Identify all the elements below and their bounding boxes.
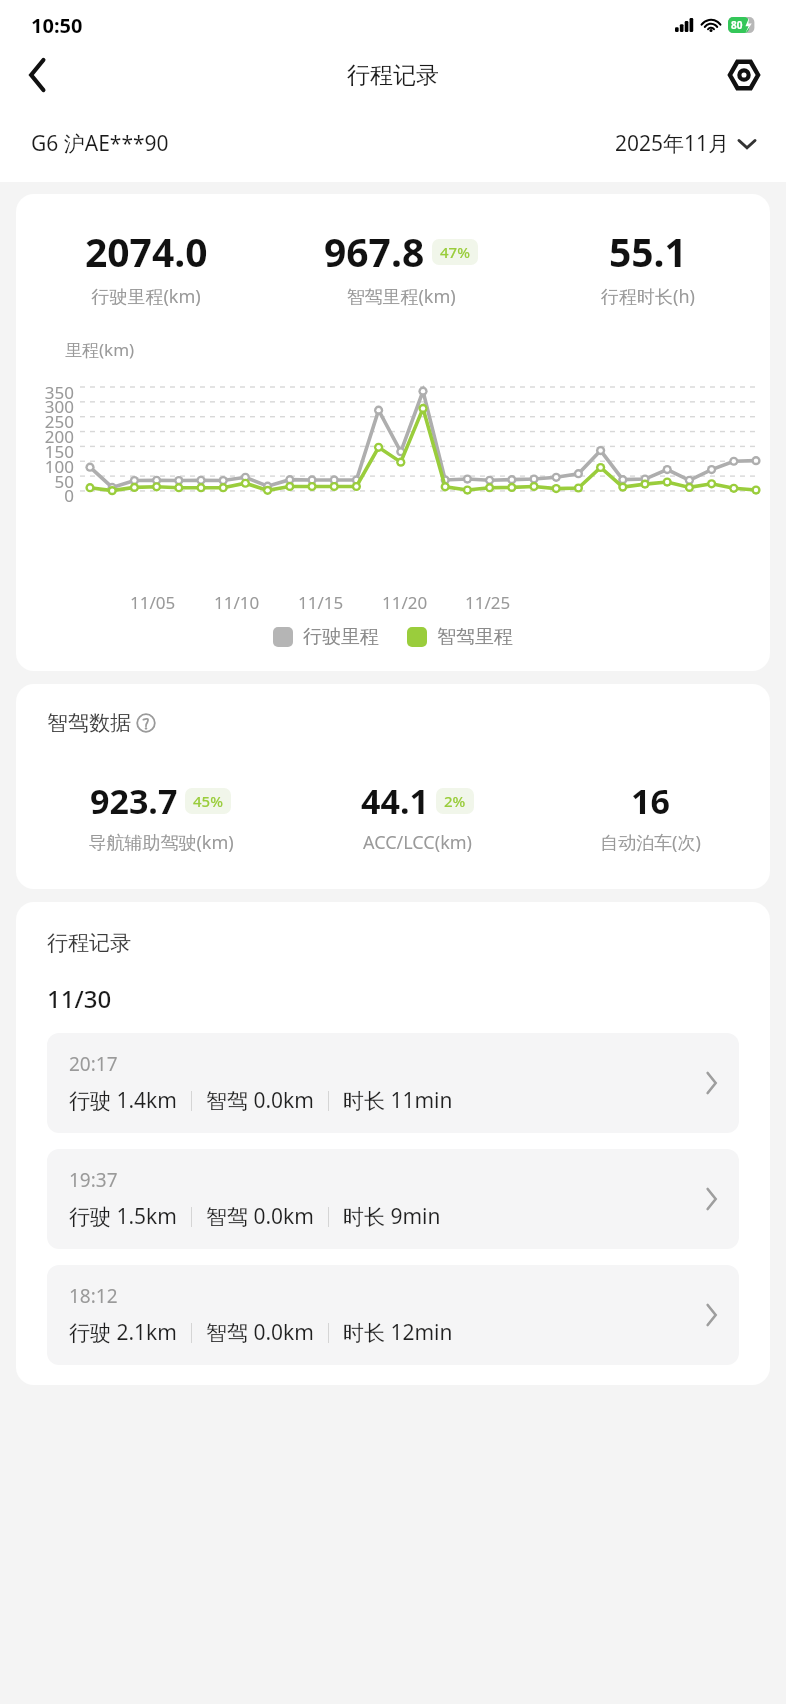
staticText: 19:37 (69, 1167, 118, 1193)
staticText: 自动泊车(次) (600, 830, 701, 855)
staticText: G6 沪AE***90 (31, 129, 169, 158)
staticText: 11/20 (382, 591, 428, 614)
staticText: 行程时长(h) (601, 284, 695, 309)
staticText: 100 (44, 455, 74, 478)
staticText: 11/25 (465, 591, 511, 614)
staticText: 时长 9min (343, 1202, 441, 1231)
button[interactable]: Settings (720, 51, 768, 99)
staticText: 时长 12min (343, 1318, 453, 1347)
staticText: 923.7 (90, 778, 178, 824)
staticText: 44.1 (361, 778, 429, 824)
staticText: 行驶 2.1km (69, 1318, 177, 1347)
staticText: 10:50 (31, 12, 83, 39)
staticText: 150 (44, 440, 74, 463)
staticText: 导航辅助驾驶(km) (88, 830, 234, 855)
staticText: 967.8 (324, 225, 425, 278)
staticText: 11/30 (47, 982, 112, 1015)
staticText: 智驾 0.0km (206, 1318, 314, 1347)
button[interactable]: Back (14, 51, 62, 99)
button[interactable]: 20:17 (47, 1033, 739, 1133)
staticText: 智驾里程 (437, 625, 513, 649)
staticText: 11/10 (214, 591, 260, 614)
staticText: 行程记录 (47, 930, 131, 956)
staticText: 250 (44, 410, 74, 433)
button[interactable]: 19:37 (47, 1149, 739, 1249)
staticText: 50 (54, 470, 74, 493)
staticText: 时长 11min (343, 1086, 453, 1115)
staticText: 300 (44, 395, 74, 418)
staticText: 2074.0 (85, 225, 208, 278)
button[interactable]: 2025年11月 (615, 129, 755, 158)
staticText: 45% (193, 791, 223, 811)
staticText: 行驶里程 (303, 625, 379, 649)
staticText: 11/15 (298, 591, 344, 614)
staticText: 行驶 1.5km (69, 1202, 177, 1231)
staticText: 智驾 0.0km (206, 1202, 314, 1231)
staticText: 200 (44, 425, 74, 448)
staticText: 80 (731, 18, 743, 32)
staticText: 11/05 (130, 591, 176, 614)
staticText: 2025年11月 (615, 129, 730, 158)
staticText: ACC/LCC(km) (363, 830, 472, 855)
staticText: 行驶 1.4km (69, 1086, 177, 1115)
staticText: 55.1 (609, 225, 687, 278)
staticText: 智驾里程(km) (346, 284, 456, 309)
staticText: 里程(km) (65, 338, 135, 361)
button[interactable]: 18:12 (47, 1265, 739, 1365)
staticText: 2% (444, 791, 466, 811)
staticText: 16 (631, 778, 670, 824)
button[interactable]: 智驾数据 (47, 710, 156, 736)
staticText: 行驶里程(km) (91, 284, 201, 309)
staticText: 智驾 0.0km (206, 1086, 314, 1115)
staticText: 350 (44, 381, 74, 404)
staticText: 20:17 (69, 1051, 118, 1077)
staticText: 47% (440, 242, 470, 262)
staticText: 智驾数据 (47, 710, 131, 736)
staticText: 18:12 (69, 1283, 118, 1309)
staticText: 0 (64, 484, 74, 507)
staticText: 行程记录 (347, 61, 439, 90)
